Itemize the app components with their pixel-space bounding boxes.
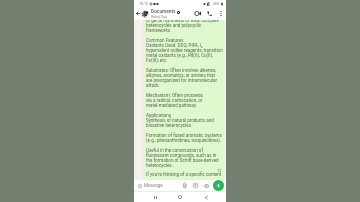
staticText: 26% [213, 2, 220, 6]
staticText: 10:15 [139, 2, 148, 6]
button[interactable]: Back [134, 7, 141, 20]
button[interactable]: Video call [192, 7, 204, 20]
staticText: Rahul, You [151, 15, 167, 19]
button[interactable]: Camera [202, 180, 211, 191]
staticText: or get an synthesis of toxic complex [146, 20, 219, 23]
staticText: Message [144, 183, 163, 188]
button[interactable]: Attach file [180, 180, 189, 191]
button[interactable]: Home [175, 192, 185, 202]
button[interactable]: Payments [191, 180, 200, 191]
button[interactable]: Back [201, 192, 211, 202]
button[interactable]: Call [204, 7, 215, 20]
button[interactable]: Voice message [213, 180, 224, 191]
button[interactable]: More options [215, 7, 226, 20]
staticText: If you're thinking of a specific content [146, 172, 222, 177]
button[interactable]: Documents [141, 7, 192, 20]
staticText: Documents [151, 9, 176, 15]
button[interactable]: or get an synthesis of toxic complex [143, 20, 224, 180]
button[interactable]: Recents [150, 192, 160, 202]
button[interactable]: Message [134, 180, 182, 191]
staticText: heterocycles and polycyclic frameworks C… [146, 23, 223, 168]
